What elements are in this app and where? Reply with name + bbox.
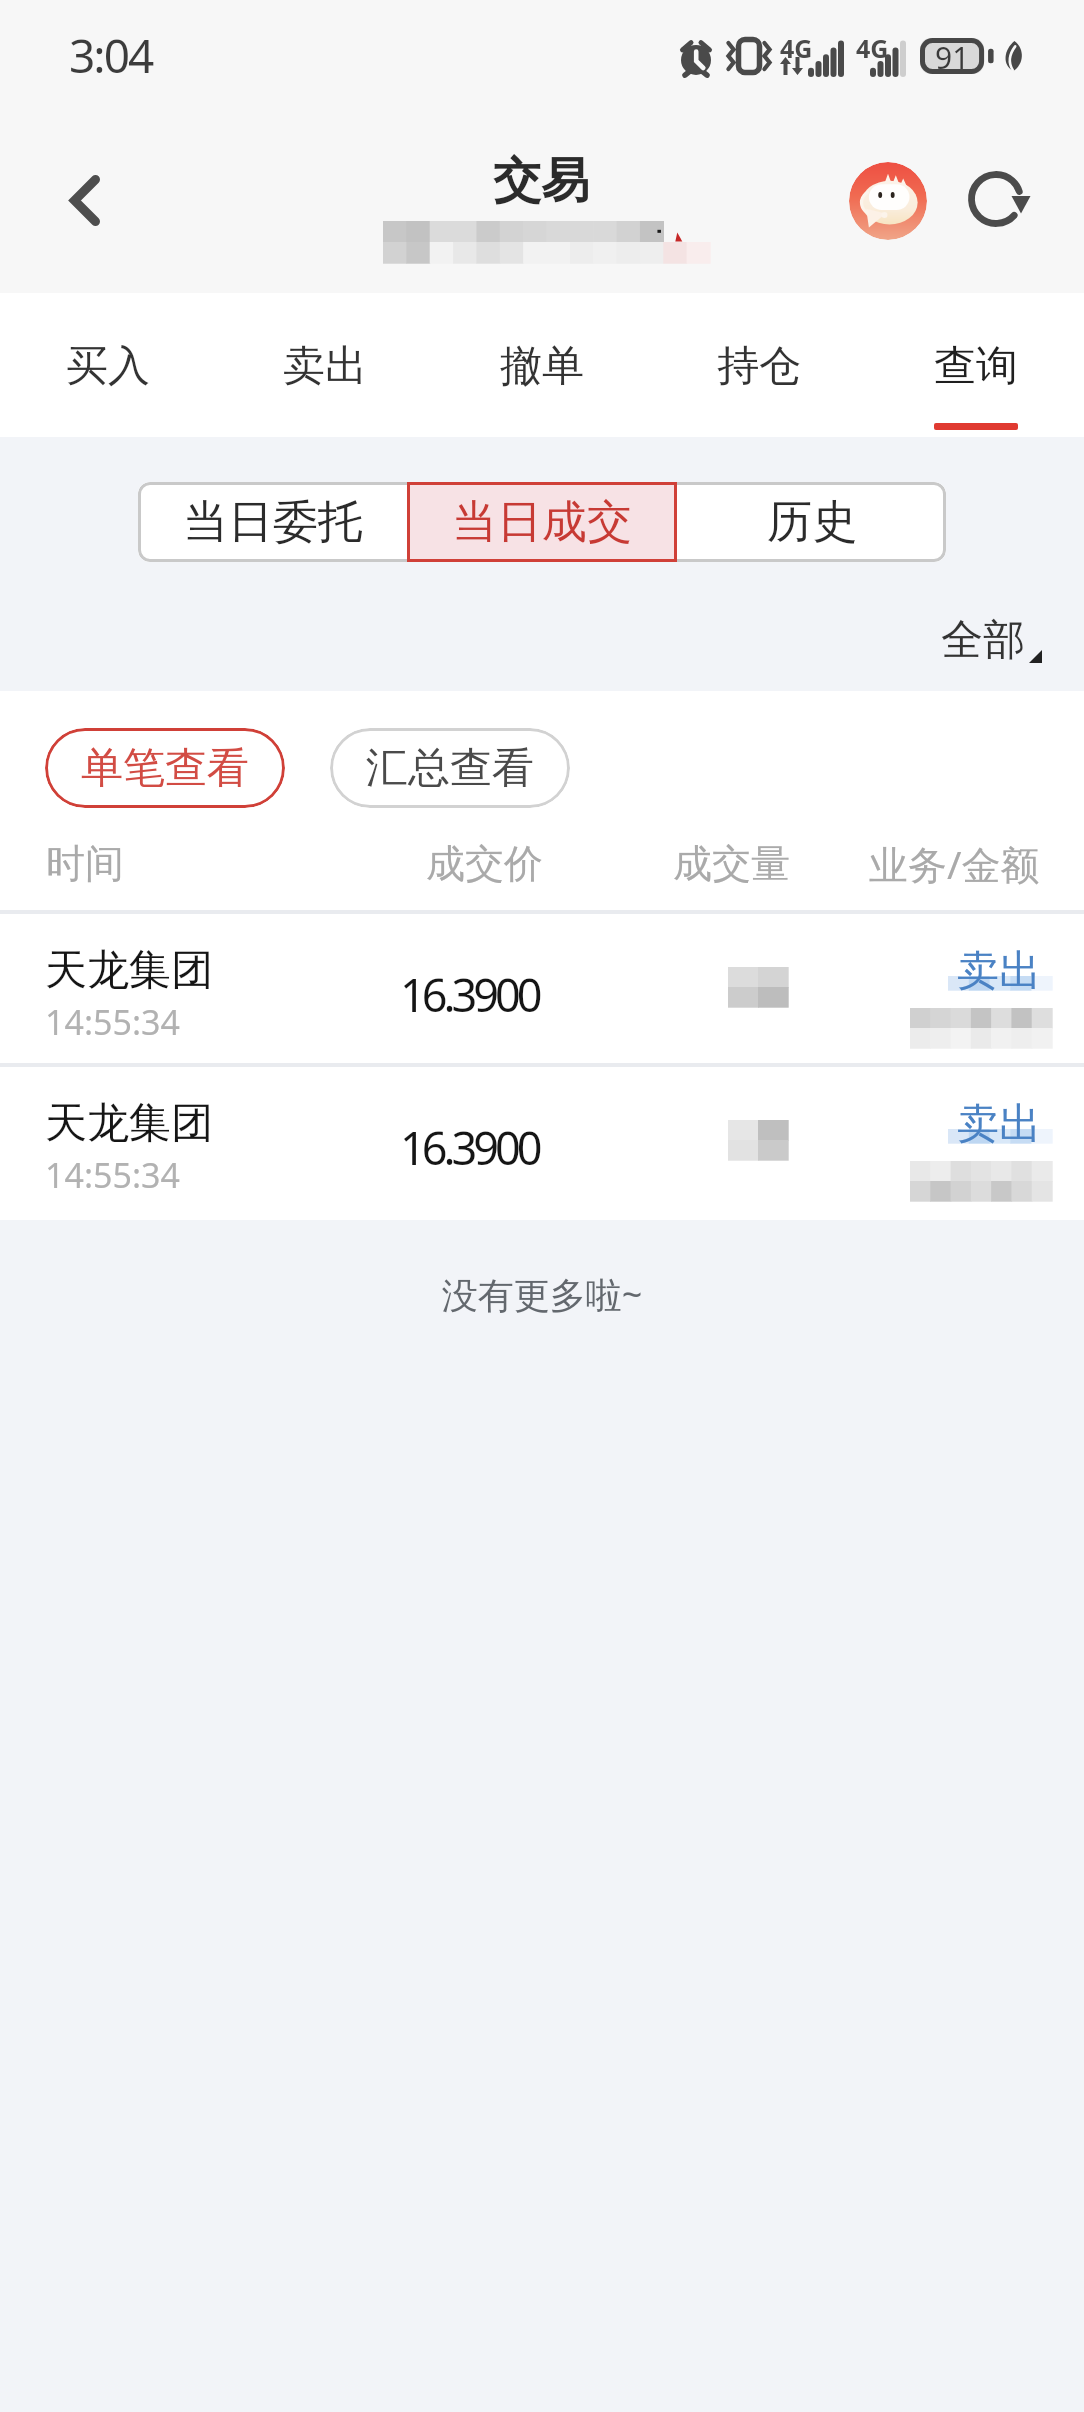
staticText: 卖出 bbox=[957, 945, 1041, 998]
staticText: 成交量 bbox=[673, 839, 790, 888]
staticText: 持仓 bbox=[717, 340, 801, 393]
staticText: 业务/金额 bbox=[869, 837, 1040, 890]
staticText: 卖出 bbox=[283, 340, 367, 393]
button[interactable]: 天龙集团 bbox=[0, 1067, 1084, 1216]
staticText: 交易 bbox=[493, 151, 589, 211]
staticText: 买入 bbox=[66, 340, 150, 393]
button[interactable]: Back bbox=[35, 150, 135, 250]
staticText: 撤单 bbox=[500, 340, 584, 393]
staticText: 天龙集团 bbox=[45, 1097, 213, 1150]
button[interactable]: 单笔查看 bbox=[45, 728, 285, 808]
button[interactable]: 当日委托 bbox=[138, 482, 408, 562]
staticText: 没有更多啦~ bbox=[0, 1270, 1084, 1319]
button[interactable]: 撤单 bbox=[433, 293, 650, 437]
staticText: 4G bbox=[856, 31, 889, 65]
staticText: 4G bbox=[780, 31, 813, 65]
staticText: 3:04 bbox=[69, 24, 153, 87]
button[interactable]: 汇总查看 bbox=[330, 728, 570, 808]
staticText: 16.3900 bbox=[400, 964, 539, 1025]
button[interactable]: 买入 bbox=[0, 293, 216, 437]
staticText: 单笔查看 bbox=[81, 742, 249, 795]
staticText: 汇总查看 bbox=[366, 742, 534, 795]
staticText: 全部 bbox=[941, 614, 1025, 667]
staticText: 时间 bbox=[46, 839, 124, 888]
staticText: 卖出 bbox=[957, 1098, 1041, 1151]
staticText: 14:55:34 bbox=[45, 1152, 180, 1198]
staticText: 当日成交 bbox=[453, 494, 633, 551]
staticText: 当日委托 bbox=[183, 494, 363, 551]
button[interactable]: 天龙集团 bbox=[0, 914, 1084, 1063]
button[interactable]: 当日成交 bbox=[408, 482, 677, 562]
button[interactable]: 全部 bbox=[911, 600, 1084, 685]
button[interactable]: 卖出 bbox=[216, 293, 433, 437]
staticText: 成交价 bbox=[426, 839, 543, 888]
staticText: 当日成交 bbox=[452, 494, 632, 551]
button[interactable]: Refresh bbox=[951, 154, 1041, 244]
button[interactable]: 当日成交 bbox=[407, 482, 677, 562]
staticText: 查询 bbox=[934, 340, 1018, 393]
button[interactable]: 查询 bbox=[867, 293, 1084, 437]
staticText: 91 bbox=[935, 37, 970, 73]
button[interactable]: Customer service bbox=[849, 162, 927, 240]
button[interactable]: 持仓 bbox=[650, 293, 867, 437]
staticText: 16.3900 bbox=[400, 1117, 539, 1178]
staticText: 14:55:34 bbox=[45, 999, 180, 1045]
button[interactable]: 历史 bbox=[677, 482, 946, 562]
staticText: 天龙集团 bbox=[45, 944, 213, 997]
staticText: 历史 bbox=[767, 494, 857, 551]
